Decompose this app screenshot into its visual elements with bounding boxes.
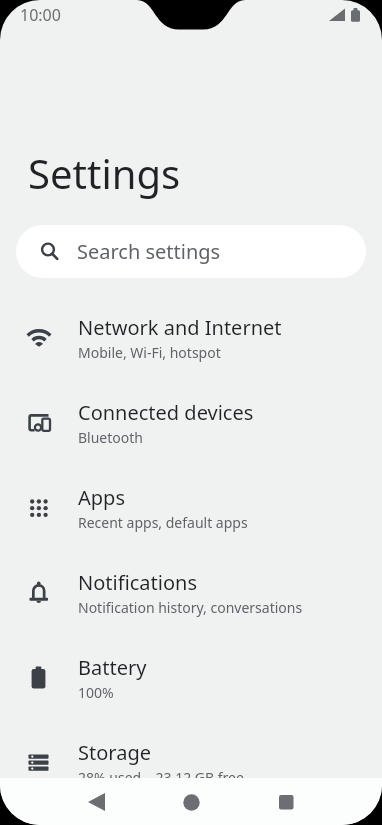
button[interactable]: Connected devices	[0, 380, 382, 465]
staticText: Recent apps, default apps	[78, 513, 248, 532]
button[interactable]: Notifications	[0, 550, 382, 635]
button[interactable]: Storage	[0, 720, 382, 805]
staticText: 100%	[78, 683, 114, 702]
staticText: Mobile, Wi-Fi, hotspot	[78, 343, 221, 362]
staticText: Battery	[78, 654, 147, 681]
button[interactable]: Network and Internet	[0, 295, 382, 380]
staticText: Search settings	[77, 238, 221, 265]
button[interactable]	[171, 782, 211, 822]
staticText: Notification history, conversations	[78, 598, 303, 617]
button[interactable]	[76, 782, 116, 822]
button[interactable]: Apps	[0, 465, 382, 550]
staticText: 10:00	[20, 4, 61, 26]
staticText: Settings	[28, 146, 181, 200]
button[interactable]: Battery	[0, 635, 382, 720]
staticText: Connected devices	[78, 399, 254, 426]
staticText: Network and Internet	[78, 314, 282, 341]
button[interactable]	[266, 782, 306, 822]
button[interactable]: Search settings	[16, 225, 366, 278]
staticText: Bluetooth	[78, 428, 143, 447]
staticText: Storage	[78, 739, 151, 766]
staticText: Apps	[78, 484, 125, 511]
staticText: Notifications	[78, 569, 197, 596]
staticText: 28% used – 23.12 GB free	[78, 768, 244, 787]
